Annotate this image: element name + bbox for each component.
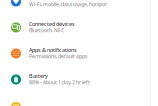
staticText: Connected devices: [29, 20, 75, 28]
staticText: 88% - About 1 day, 2 hr left: [29, 79, 90, 86]
staticText: Permissions, default apps: [29, 53, 87, 60]
button[interactable]: Connected devices: [0, 14, 158, 40]
staticText: Wi-Fi, mobile, data usage, hotspot: [29, 1, 107, 8]
button[interactable]: Apps & notifications: [0, 40, 158, 66]
button[interactable]: Battery: [0, 66, 158, 92]
staticText: Apps & notifications: [29, 46, 77, 54]
staticText: Battery: [29, 72, 48, 80]
button[interactable]: Network & internet: [0, 0, 158, 14]
staticText: Bluetooth, NFC: [29, 27, 64, 34]
button[interactable]: Display: [0, 92, 158, 106]
